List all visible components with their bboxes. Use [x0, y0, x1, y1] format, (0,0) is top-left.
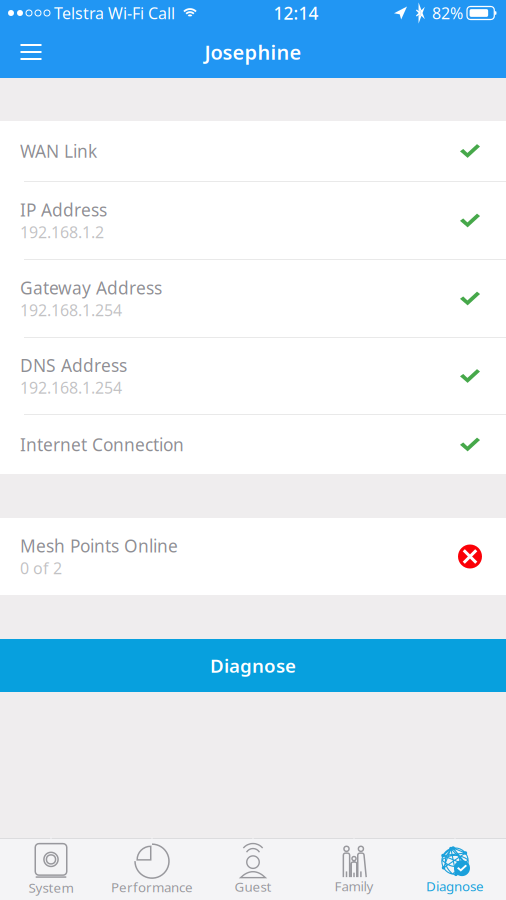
button[interactable]: IP Address [0, 182, 506, 259]
staticText: DNS Address [20, 354, 127, 377]
button[interactable]: Diagnose [0, 639, 506, 692]
staticText: System [28, 879, 73, 896]
staticText: 0 of 2 [20, 557, 62, 579]
button[interactable]: Menu [0, 30, 62, 74]
button[interactable]: Diagnose [404, 839, 505, 900]
staticText: Mesh Points Online [20, 534, 178, 557]
staticText: Family [334, 877, 373, 895]
staticText: IP Address [20, 198, 107, 221]
button[interactable]: Family [303, 839, 404, 900]
staticText: 192.168.1.254 [20, 299, 122, 321]
staticText: Internet Connection [20, 433, 184, 456]
button[interactable]: Gateway Address [0, 260, 506, 337]
staticText: Josephine [204, 39, 301, 65]
staticText: WAN Link [20, 139, 97, 162]
staticText: 192.168.1.2 [20, 221, 104, 243]
button[interactable]: Mesh Points Online [0, 518, 506, 595]
staticText: Performance [111, 878, 193, 896]
staticText: Diagnose [426, 877, 484, 895]
button[interactable]: Performance [101, 839, 202, 900]
staticText: Telstra Wi-Fi Call [50, 2, 175, 24]
staticText: Guest [234, 878, 271, 895]
button[interactable]: DNS Address [0, 338, 506, 414]
staticText: 12:14 [273, 1, 318, 24]
staticText: 192.168.1.254 [20, 377, 122, 398]
staticText: Gateway Address [20, 276, 162, 299]
button[interactable]: Guest [202, 839, 303, 900]
button[interactable]: Internet Connection [0, 415, 506, 474]
button[interactable]: WAN Link [0, 121, 506, 181]
button[interactable]: System [0, 839, 101, 900]
staticText: Diagnose [210, 653, 296, 678]
staticText: 82% [424, 2, 467, 24]
